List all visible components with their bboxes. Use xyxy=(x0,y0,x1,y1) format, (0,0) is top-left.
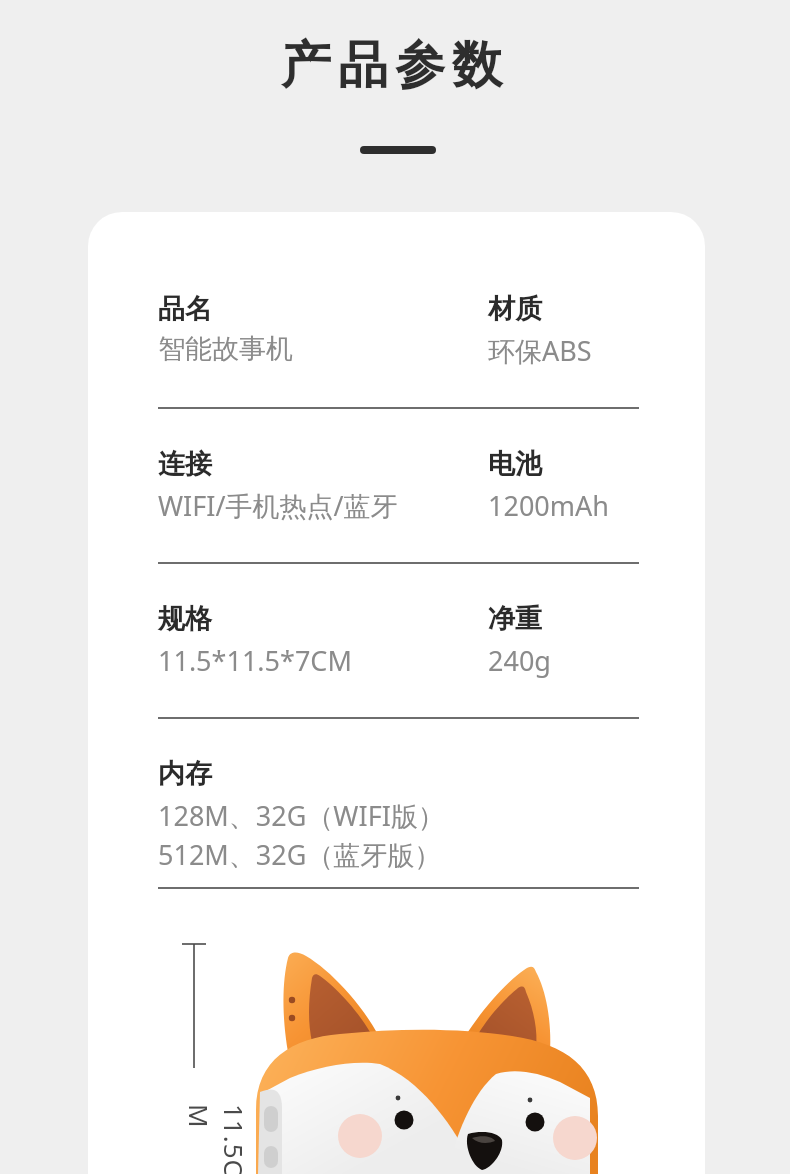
staticText: 电池 xyxy=(488,447,542,481)
staticText: 产品参数 xyxy=(0,34,790,97)
other: 产品图片 xyxy=(230,930,630,1174)
button[interactable]: 规格 xyxy=(88,602,705,679)
button[interactable]: 连接 xyxy=(88,447,705,524)
staticText: 11.5CM xyxy=(182,1104,252,1174)
staticText: 240g xyxy=(488,642,551,679)
staticText: 品名 xyxy=(158,292,212,326)
staticText: 智能故事机 xyxy=(158,332,293,366)
button[interactable]: 品名 xyxy=(88,292,705,369)
button[interactable]: 内存 xyxy=(88,757,705,875)
staticText: 净重 xyxy=(488,602,542,636)
staticText: 材质 xyxy=(488,292,542,326)
staticText: 内存 xyxy=(158,757,212,791)
staticText: 规格 xyxy=(158,602,212,636)
staticText: 1200mAh xyxy=(488,487,609,524)
staticText: 11.5*11.5*7CM xyxy=(158,642,352,679)
staticText: 512M、32G（蓝牙版） xyxy=(158,836,442,873)
staticText: 连接 xyxy=(158,447,212,481)
staticText: WIFI/手机热点/蓝牙 xyxy=(158,487,398,524)
staticText: 环保ABS xyxy=(488,332,592,369)
staticText: 128M、32G（WIFI版） xyxy=(158,797,445,834)
